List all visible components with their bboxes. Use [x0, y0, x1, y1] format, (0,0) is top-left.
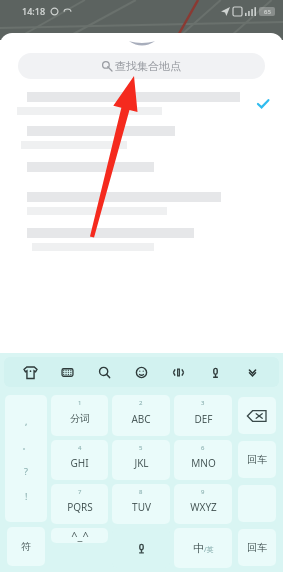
button[interactable]: 符: [7, 527, 45, 566]
staticText: 。: [22, 440, 31, 451]
staticText: ^_^: [71, 528, 89, 543]
staticText: 2: [139, 399, 143, 407]
staticText: TUV: [132, 500, 151, 514]
staticText: 3: [201, 399, 205, 407]
button[interactable]: [0, 157, 283, 187]
staticText: 1: [78, 399, 82, 407]
button[interactable]: 7: [51, 484, 108, 524]
button[interactable]: Voice input: [197, 357, 234, 387]
button[interactable]: Punctuation: [5, 395, 47, 522]
button[interactable]: 8: [112, 484, 170, 524]
button[interactable]: 回车: [238, 529, 276, 566]
staticText: !: [25, 490, 28, 502]
button[interactable]: Backspace: [238, 397, 276, 434]
button[interactable]: Selected: [0, 87, 283, 121]
button[interactable]: 4: [51, 440, 108, 480]
button[interactable]: Emoji: [123, 357, 160, 387]
button[interactable]: Voice input: [112, 528, 170, 568]
button[interactable]: Keyboard layout: [49, 357, 86, 387]
button[interactable]: 回车: [238, 441, 276, 478]
button[interactable]: 6: [174, 440, 232, 480]
staticText: MNO: [191, 456, 216, 470]
staticText: ABC: [131, 412, 151, 426]
button[interactable]: [0, 187, 283, 223]
button[interactable]: Collapse keyboard: [234, 357, 271, 387]
button[interactable]: 1: [51, 395, 108, 436]
staticText: 5: [139, 444, 143, 452]
button[interactable]: Theme: [12, 357, 49, 387]
button[interactable]: [0, 121, 283, 157]
staticText: 9: [201, 488, 205, 496]
staticText: 回车: [247, 453, 267, 466]
staticText: ,: [25, 415, 28, 427]
other: Selected: [257, 98, 269, 110]
staticText: 中: [193, 541, 204, 555]
staticText: 查找集合地点: [115, 59, 181, 73]
staticText: 符: [21, 540, 31, 553]
staticText: 6: [201, 444, 205, 452]
button[interactable]: 2: [112, 395, 170, 436]
staticText: PQRS: [67, 500, 93, 514]
button[interactable]: ^_^: [51, 528, 108, 543]
button[interactable]: 9: [174, 484, 232, 524]
staticText: 回车: [247, 541, 267, 554]
staticText: JKL: [134, 456, 149, 470]
button[interactable]: [0, 223, 283, 257]
staticText: 14:18: [22, 5, 46, 17]
staticText: 65: [264, 8, 271, 16]
button[interactable]: Search: [86, 357, 123, 387]
button[interactable]: 3: [174, 395, 232, 436]
button[interactable]: 5: [112, 440, 170, 480]
staticText: 8: [139, 488, 143, 496]
staticText: GHI: [70, 456, 89, 470]
button[interactable]: 查找集合地点: [18, 53, 265, 79]
staticText: 4: [78, 444, 82, 452]
staticText: DEF: [194, 412, 213, 426]
button[interactable]: 中: [174, 528, 232, 568]
staticText: WXYZ: [190, 500, 217, 514]
staticText: 7: [78, 488, 82, 496]
staticText: /英: [204, 545, 214, 555]
staticText: ?: [24, 465, 28, 477]
staticText: 分词: [70, 412, 90, 425]
button[interactable]: Clipboard: [160, 357, 197, 387]
